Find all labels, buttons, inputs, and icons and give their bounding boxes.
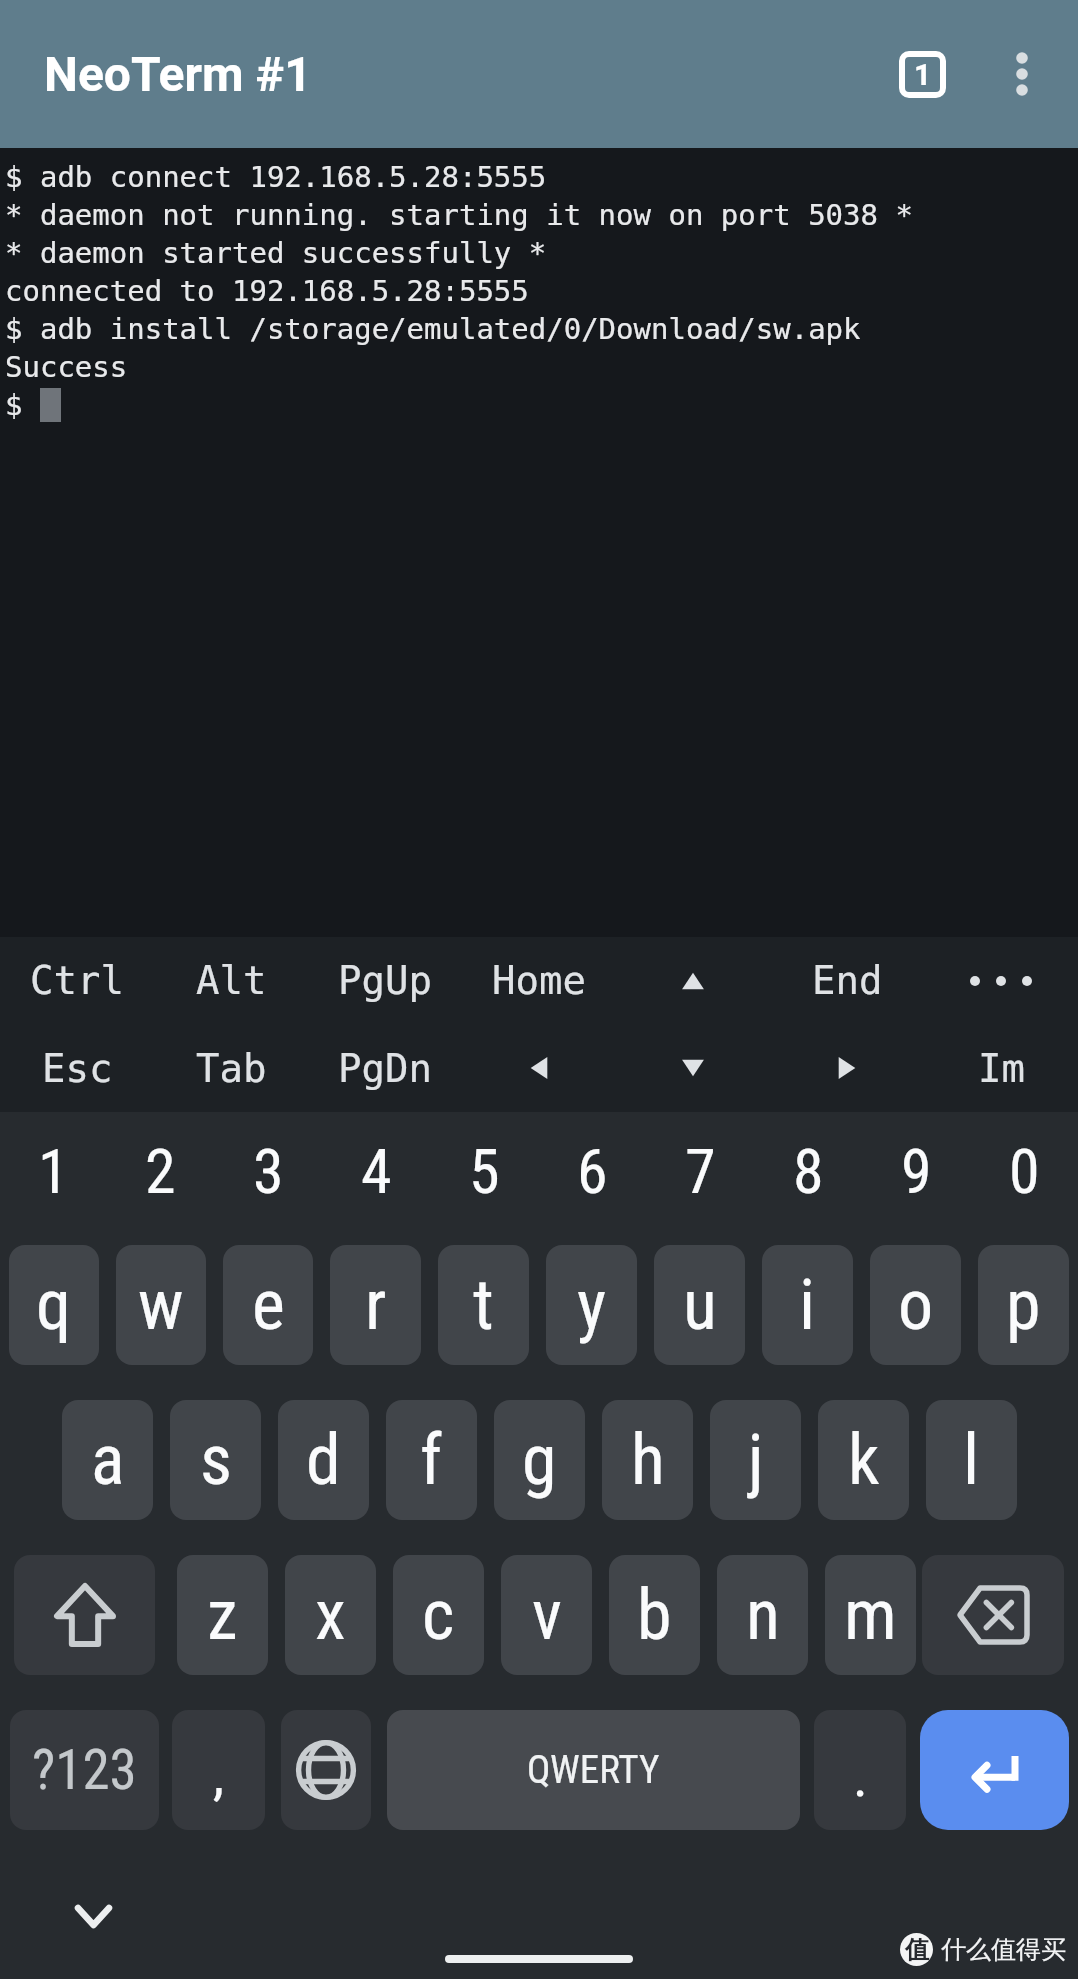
button[interactable]: , [172,1710,265,1830]
staticText: c [422,1574,455,1656]
button[interactable]: Im [924,1024,1078,1112]
staticText: i [799,1264,816,1346]
staticText: Ctrl [30,958,124,1003]
staticText: 6 [577,1135,608,1208]
button[interactable]: . [814,1710,906,1830]
button[interactable]: d [278,1400,369,1520]
button[interactable] [14,1555,155,1675]
staticText: o [898,1264,934,1346]
button[interactable]: 5 [430,1112,538,1230]
button[interactable]: 7 [646,1112,754,1230]
button[interactable] [924,937,1078,1024]
staticText: End [812,958,883,1003]
button[interactable]: t [438,1245,529,1365]
button[interactable]: 8 [754,1112,862,1230]
staticText: PgUp [338,958,432,1003]
button[interactable]: Tab [154,1024,308,1112]
button[interactable] [770,1024,924,1112]
staticText: 5 [469,1135,500,1208]
button[interactable] [1010,51,1034,97]
staticText: 1 [38,1135,69,1208]
button[interactable]: 0 [970,1112,1078,1230]
staticText: 8 [793,1135,824,1208]
button[interactable]: a [62,1400,153,1520]
staticText: ?123 [32,1738,137,1802]
button[interactable] [616,1024,770,1112]
button[interactable]: 1 [0,1112,107,1230]
button[interactable]: 6 [538,1112,646,1230]
button[interactable]: Home [462,937,616,1024]
staticText: . [853,1744,868,1810]
staticText: y [577,1264,607,1346]
button[interactable]: 4 [322,1112,430,1230]
button[interactable]: p [978,1245,1069,1365]
button[interactable]: s [170,1400,261,1520]
button[interactable] [71,1900,115,1932]
staticText: 4 [361,1135,392,1208]
staticText: * daemon not running. starting it now on… [5,198,913,232]
staticText: v [532,1574,562,1656]
button[interactable]: z [177,1555,268,1675]
staticText: m [844,1574,897,1656]
staticText: p [1006,1264,1041,1346]
staticText: Success [5,350,128,384]
button[interactable]: m [825,1555,916,1675]
button[interactable]: 9 [862,1112,970,1230]
staticText: x [315,1574,346,1656]
staticText: t [473,1264,494,1346]
button[interactable]: End [770,937,924,1024]
button[interactable]: v [501,1555,592,1675]
button[interactable]: n [717,1555,808,1675]
button[interactable]: 3 [214,1112,322,1230]
staticText: $ [5,388,23,422]
button[interactable]: o [870,1245,961,1365]
staticText: 2 [145,1135,176,1208]
staticText: b [637,1574,672,1656]
button[interactable] [922,1555,1064,1675]
button[interactable]: 1 [899,51,946,98]
staticText: PgDn [338,1046,432,1091]
button[interactable]: e [223,1245,313,1365]
staticText: , [213,1742,225,1808]
button[interactable]: j [710,1400,801,1520]
button[interactable]: w [116,1245,206,1365]
button[interactable]: h [602,1400,693,1520]
staticText: q [36,1264,72,1346]
staticText: d [306,1419,341,1501]
button[interactable]: b [609,1555,700,1675]
button[interactable]: QWERTY [387,1710,800,1830]
button[interactable] [616,937,770,1024]
button[interactable]: Alt [154,937,308,1024]
button[interactable]: l [926,1400,1017,1520]
staticText: u [683,1264,717,1346]
button[interactable]: Esc [0,1024,154,1112]
button[interactable]: g [494,1400,585,1520]
staticText: w [138,1264,184,1346]
button[interactable]: ?123 [10,1710,159,1830]
staticText: 值 [905,1935,929,1965]
staticText: l [963,1419,980,1501]
button[interactable]: PgUp [308,937,462,1024]
staticText: a [91,1419,125,1501]
button[interactable]: f [386,1400,477,1520]
button[interactable]: r [330,1245,421,1365]
staticText: QWERTY [527,1747,660,1793]
button[interactable] [281,1710,371,1830]
button[interactable]: u [654,1245,745,1365]
button[interactable]: y [546,1245,637,1365]
button[interactable] [920,1710,1069,1830]
button[interactable]: q [9,1245,99,1365]
button[interactable] [462,1024,616,1112]
button[interactable]: 2 [107,1112,214,1230]
button[interactable]: x [285,1555,376,1675]
button[interactable]: Ctrl [0,937,154,1024]
staticText: h [631,1419,665,1501]
staticText: e [252,1264,285,1346]
staticText: $ adb install /storage/emulated/0/Downlo… [5,312,861,346]
button[interactable]: i [762,1245,853,1365]
button[interactable]: c [393,1555,484,1675]
staticText: Alt [196,958,267,1003]
button[interactable]: k [818,1400,909,1520]
staticText: 7 [685,1135,716,1208]
button[interactable]: PgDn [308,1024,462,1112]
